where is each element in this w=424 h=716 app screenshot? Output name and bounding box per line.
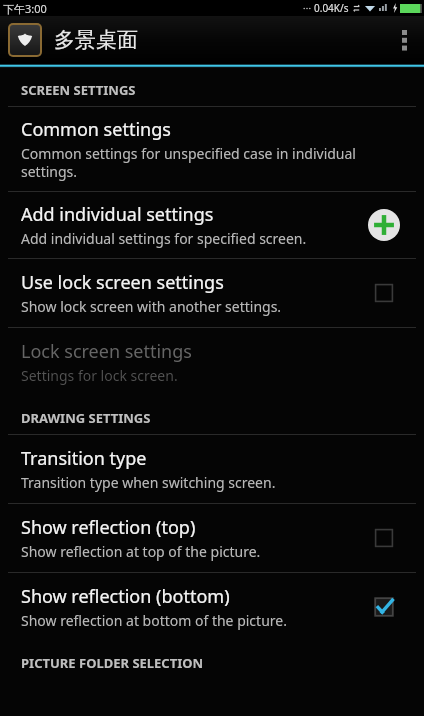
staticText: 多景桌面 xyxy=(54,27,138,53)
button: Lock screen settings xyxy=(0,328,424,396)
staticText: Lock screen settings xyxy=(21,339,192,364)
staticText: Show reflection at bottom of the picture… xyxy=(21,611,287,630)
button[interactable]: Add individual settings xyxy=(0,192,424,258)
button[interactable]: Transition type xyxy=(0,435,424,503)
staticText: 0.04K/s xyxy=(314,1,349,15)
staticText: Show reflection at top of the picture. xyxy=(21,542,261,561)
button[interactable]: More options xyxy=(384,16,424,64)
staticText: PICTURE FOLDER SELECTION xyxy=(21,654,204,672)
staticText: Common settings xyxy=(21,117,171,142)
staticText: Show reflection (top) xyxy=(21,515,196,540)
staticText: Common settings for unspecified case in … xyxy=(21,144,412,181)
staticText: Show lock screen with another settings. xyxy=(21,297,282,316)
button[interactable]: Checked xyxy=(367,590,401,624)
button[interactable]: Unchecked xyxy=(367,276,401,310)
staticText: SCREEN SETTINGS xyxy=(21,81,136,99)
button[interactable]: Unchecked xyxy=(367,521,401,555)
staticText: DRAWING SETTINGS xyxy=(21,409,151,427)
button[interactable]: Show reflection (top) xyxy=(0,504,424,572)
staticText: Transition type xyxy=(21,446,147,471)
staticText: Add individual settings xyxy=(21,202,214,227)
staticText: Add individual settings for specified sc… xyxy=(21,229,307,248)
staticText: 下午3:00 xyxy=(3,1,47,16)
button[interactable]: Common settings xyxy=(0,107,424,191)
button[interactable]: Show reflection (bottom) xyxy=(0,573,424,641)
staticText: Settings for lock screen. xyxy=(21,366,178,385)
staticText: Use lock screen settings xyxy=(21,270,224,295)
button[interactable]: Add individual settings xyxy=(367,208,401,242)
button[interactable]: Use lock screen settings xyxy=(0,259,424,327)
staticText: Show reflection (bottom) xyxy=(21,584,230,609)
staticText: Transition type when switching screen. xyxy=(21,473,276,492)
